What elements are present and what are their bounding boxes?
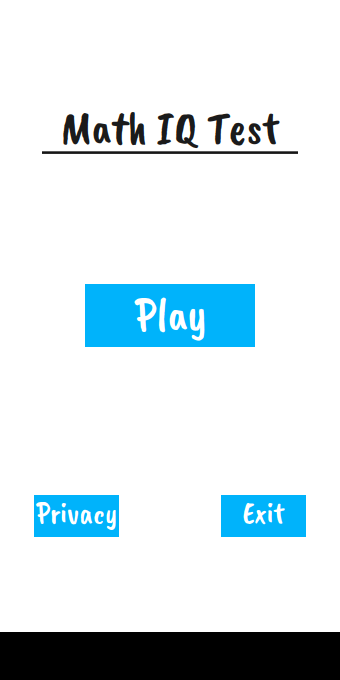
staticText: Math IQ Test (60, 99, 279, 157)
staticText: Privacy (36, 494, 117, 532)
staticText: Exit (242, 494, 284, 532)
button[interactable]: Privacy (34, 495, 119, 537)
button[interactable]: Exit (221, 495, 306, 537)
button[interactable]: Play (85, 284, 255, 347)
staticText: Play (134, 285, 207, 344)
